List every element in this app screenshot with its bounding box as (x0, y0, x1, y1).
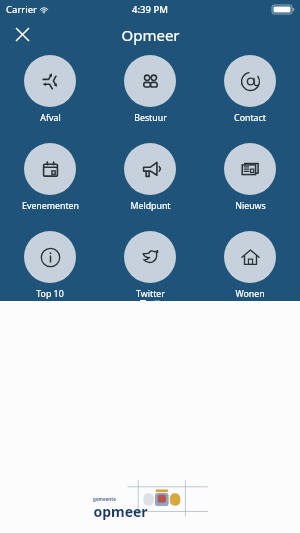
staticText: Bestuur (134, 112, 167, 124)
button[interactable]: Close (5, 18, 39, 51)
staticText: 4:39 PM (132, 3, 168, 16)
button[interactable]: Bestuur (100, 55, 200, 124)
staticText: Top 10 (36, 288, 64, 300)
staticText: Meldpunt (130, 200, 171, 212)
button[interactable]: Top 10 (0, 231, 100, 300)
staticText: Opmeer (121, 25, 180, 45)
staticText: Nieuws (235, 200, 266, 212)
staticText: Evenementen (22, 200, 79, 212)
button[interactable]: Twitter (100, 231, 200, 300)
staticText: Contact (234, 112, 266, 124)
staticText: opmeer (93, 502, 148, 521)
staticText: Carrier (6, 3, 37, 16)
button[interactable]: Wonen (200, 231, 300, 300)
button[interactable]: Meldpunt (100, 143, 200, 212)
staticText: Wonen (235, 288, 265, 300)
staticText: gemeente (93, 496, 116, 502)
button[interactable]: Nieuws (200, 143, 300, 212)
staticText: Twitter (136, 288, 165, 300)
button[interactable]: Evenementen (0, 143, 100, 212)
button[interactable]: Contact (200, 55, 300, 124)
button[interactable]: Afval (0, 55, 100, 124)
staticText: Afval (40, 112, 61, 124)
